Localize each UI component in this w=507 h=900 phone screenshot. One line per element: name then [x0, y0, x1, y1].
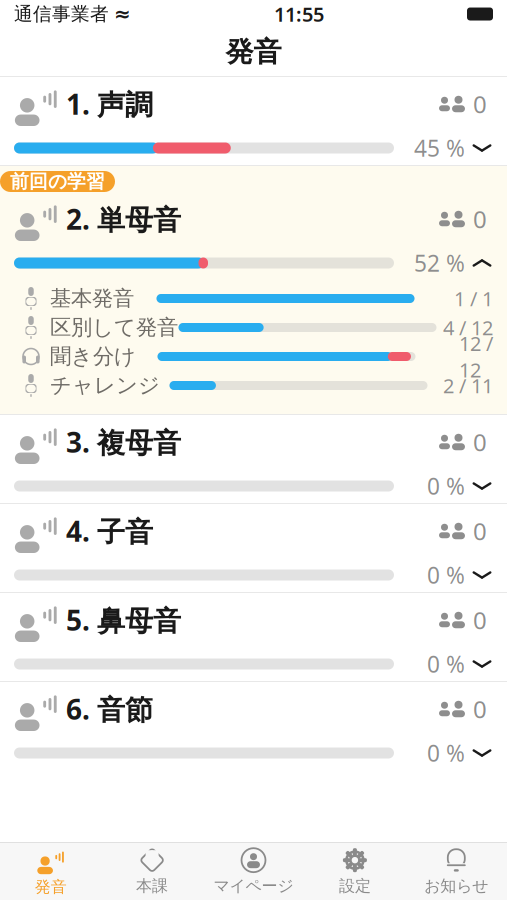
button[interactable]: 本課: [101, 843, 203, 899]
staticText: 4 / 12: [443, 314, 493, 341]
button[interactable]: 発音: [0, 843, 101, 899]
staticText: 発音: [35, 877, 67, 897]
staticText: 基本発音: [50, 285, 134, 312]
staticText: 0 %: [427, 738, 465, 768]
button[interactable]: 6. 音節: [0, 682, 507, 770]
staticText: 6. 音節: [66, 690, 153, 728]
staticText: 45 %: [414, 133, 465, 163]
staticText: 本課: [136, 876, 168, 896]
staticText: 通信事業者: [14, 2, 109, 25]
staticText: 3. 複母音: [66, 423, 181, 461]
staticText: 0 %: [427, 649, 465, 679]
staticText: 2. 単母音: [66, 200, 181, 238]
staticText: 1. 声調: [66, 85, 153, 123]
staticText: 4. 子音: [66, 512, 153, 550]
button[interactable]: 設定: [304, 843, 406, 899]
staticText: 0 %: [427, 471, 465, 501]
staticText: 5. 鼻母音: [66, 601, 181, 639]
button[interactable]: 4. 子音: [0, 504, 507, 592]
staticText: チャレンジ: [50, 372, 160, 399]
staticText: 0: [473, 426, 487, 458]
staticText: 0: [473, 693, 487, 725]
button[interactable]: 5. 鼻母音: [0, 593, 507, 681]
button[interactable]: マイページ: [203, 843, 304, 899]
staticText: 前回の学習: [10, 170, 105, 193]
staticText: 聞き分け: [50, 343, 136, 370]
staticText: 0: [473, 203, 487, 235]
button[interactable]: お知らせ: [406, 843, 507, 899]
staticText: 0: [473, 604, 487, 636]
staticText: ≈: [114, 3, 131, 25]
staticText: 区別して発音: [50, 314, 178, 341]
staticText: 1 / 1: [454, 285, 493, 312]
staticText: 52 %: [414, 248, 465, 278]
staticText: 発音: [225, 35, 281, 69]
button[interactable]: 2. 単母音: [0, 192, 507, 280]
staticText: マイページ: [213, 876, 293, 896]
staticText: 0: [473, 88, 487, 120]
staticText: 12 / 12: [459, 330, 493, 383]
staticText: 11:55: [274, 1, 324, 27]
button[interactable]: 1. 声調: [0, 77, 507, 165]
staticText: 2 / 11: [443, 372, 493, 399]
staticText: 0 %: [427, 560, 465, 590]
staticText: お知らせ: [424, 876, 488, 896]
button[interactable]: 3. 複母音: [0, 415, 507, 503]
staticText: 0: [473, 515, 487, 547]
staticText: 設定: [339, 876, 371, 896]
